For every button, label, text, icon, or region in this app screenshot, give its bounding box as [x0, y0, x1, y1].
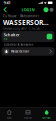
button[interactable]: Schalter [1, 31, 54, 42]
staticText: Räume [23, 116, 32, 119]
staticText: Zu Hause · Wohnzimmer [3, 14, 39, 18]
staticText: Schalter [4, 32, 20, 37]
button[interactable]: Profile [49, 6, 54, 13]
staticText: Ein [4, 37, 8, 41]
button[interactable]: Räume [19, 108, 37, 121]
staticText: Geräte [42, 116, 51, 119]
staticText: Zubehör & Sensoren [3, 43, 33, 46]
button[interactable]: Wassersensor [1, 47, 54, 56]
staticText: Start [7, 116, 12, 119]
staticText: Wassersensor [11, 50, 29, 53]
staticText: 9:41 [3, 0, 10, 5]
staticText: WASSERSOR… [3, 18, 49, 27]
button[interactable]: Start [0, 108, 19, 121]
button[interactable]: Back [2, 6, 9, 14]
button[interactable]: Connected [43, 6, 49, 13]
button[interactable]: Geräte [37, 108, 56, 121]
staticText: LOGIN [21, 7, 34, 12]
staticText: Bewässerung aktiv · 2 Geräte [3, 27, 41, 30]
